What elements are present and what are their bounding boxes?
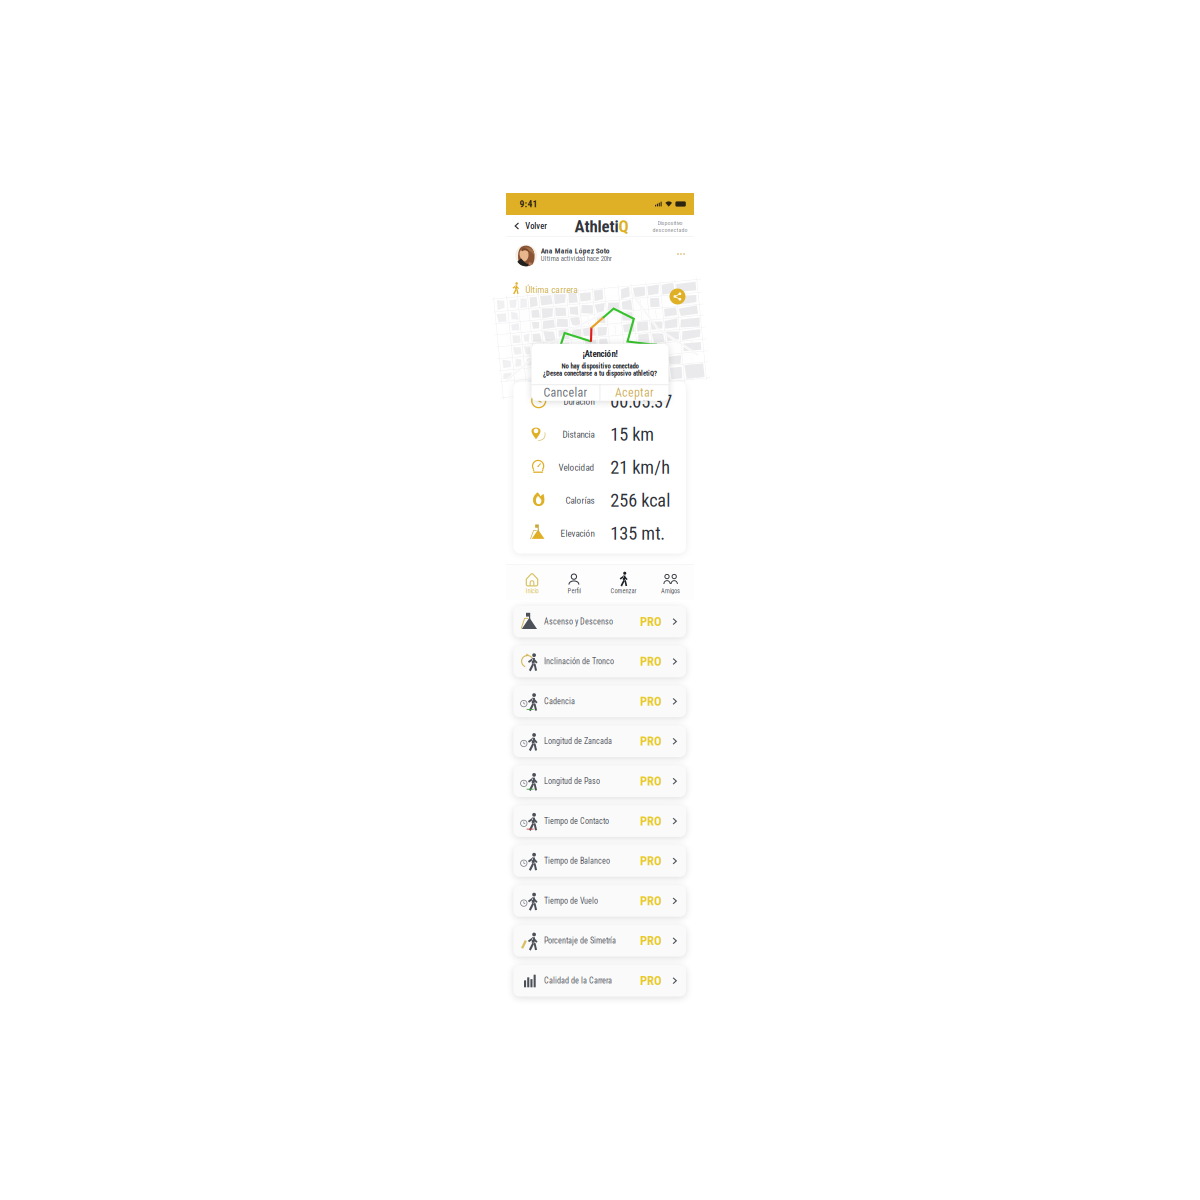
staticText: PRO — [640, 933, 662, 948]
button[interactable]: Amigos — [647, 573, 694, 600]
staticText: Cadencia — [544, 697, 575, 706]
staticText: Cancelar — [544, 386, 588, 400]
button[interactable]: Aceptar — [600, 385, 668, 401]
button[interactable]: Cancelar — [531, 385, 600, 401]
staticText: ¡Atención! — [582, 349, 617, 359]
staticText: 21 km/h — [610, 457, 670, 478]
staticText: Tiempo de Vuelo — [544, 896, 598, 906]
button[interactable]: Inicio — [508, 573, 555, 600]
staticText: 135 mt. — [610, 523, 665, 544]
button[interactable]: Volver — [506, 215, 553, 237]
staticText: Ascenso y Descenso — [544, 617, 613, 626]
staticText: Velocidad — [558, 462, 594, 473]
staticText: Longitud de Zancada — [544, 736, 612, 746]
staticText: Ana María López Soto — [541, 247, 610, 255]
staticText: PRO — [640, 774, 662, 789]
staticText: Calorías — [565, 495, 594, 506]
staticText: PRO — [640, 734, 662, 749]
staticText: PRO — [640, 854, 662, 868]
button[interactable]: Comenzar — [600, 573, 647, 600]
button[interactable]: Longitud de Paso — [513, 765, 686, 797]
staticText: Distancia — [562, 429, 594, 440]
button[interactable]: Tiempo de Balanceo — [513, 845, 686, 877]
button[interactable]: Inclinación de Tronco — [513, 646, 686, 677]
staticText: Tiempo de Balanceo — [544, 856, 610, 866]
staticText: PRO — [640, 694, 662, 709]
staticText: Comenzar — [611, 587, 637, 595]
staticText: 256 kcal — [610, 490, 670, 511]
button[interactable]: Ascenso y Descenso — [513, 606, 686, 637]
button[interactable]: Tiempo de Vuelo — [513, 885, 686, 917]
staticText: PRO — [640, 973, 662, 988]
staticText: PRO — [640, 814, 662, 828]
staticText: Elevación — [560, 528, 594, 539]
staticText: Inicio — [525, 587, 538, 595]
staticText: Inclinación de Tronco — [544, 657, 614, 666]
staticText: Tiempo de Contacto — [544, 816, 609, 826]
button[interactable]: Más opciones — [672, 246, 690, 262]
staticText: desconectado — [652, 227, 687, 234]
staticText: Duración — [563, 396, 594, 407]
staticText: PRO — [640, 614, 662, 629]
staticText: Longitud de Paso — [544, 776, 600, 786]
staticText: Volver — [525, 221, 547, 231]
staticText: Aceptar — [615, 386, 654, 400]
staticText: 15 km — [610, 424, 654, 445]
button[interactable]: Calidad de la Carrera — [513, 965, 686, 996]
button[interactable]: Cadencia — [513, 686, 686, 717]
staticText: ¿Desea conectarse a tu disposivo athleti… — [543, 369, 657, 377]
staticText: Porcentaje de Simetría — [544, 936, 616, 945]
staticText: Q — [618, 217, 628, 236]
staticText: 9:41 — [519, 198, 537, 210]
staticText: Última carrera — [525, 284, 578, 295]
staticText: Dispositivo — [657, 219, 682, 226]
button[interactable]: Longitud de Zancada — [513, 725, 686, 757]
staticText: Perfil — [567, 587, 580, 595]
staticText: Calidad de la Carrera — [544, 976, 612, 985]
staticText: Amigos — [661, 587, 680, 595]
button[interactable]: Perfil — [550, 573, 597, 600]
button[interactable]: Tiempo de Contacto — [513, 805, 686, 837]
staticText: No hay dispositivo conectado — [561, 362, 638, 370]
staticText: Athleti — [574, 217, 618, 236]
staticText: Ultima actividad hace 20hr — [541, 255, 612, 263]
staticText: PRO — [640, 654, 662, 669]
staticText: PRO — [640, 894, 662, 908]
button[interactable]: Compartir — [669, 288, 685, 304]
button[interactable]: Porcentaje de Simetría — [513, 925, 686, 957]
staticText: 00:05:37 — [610, 391, 672, 412]
